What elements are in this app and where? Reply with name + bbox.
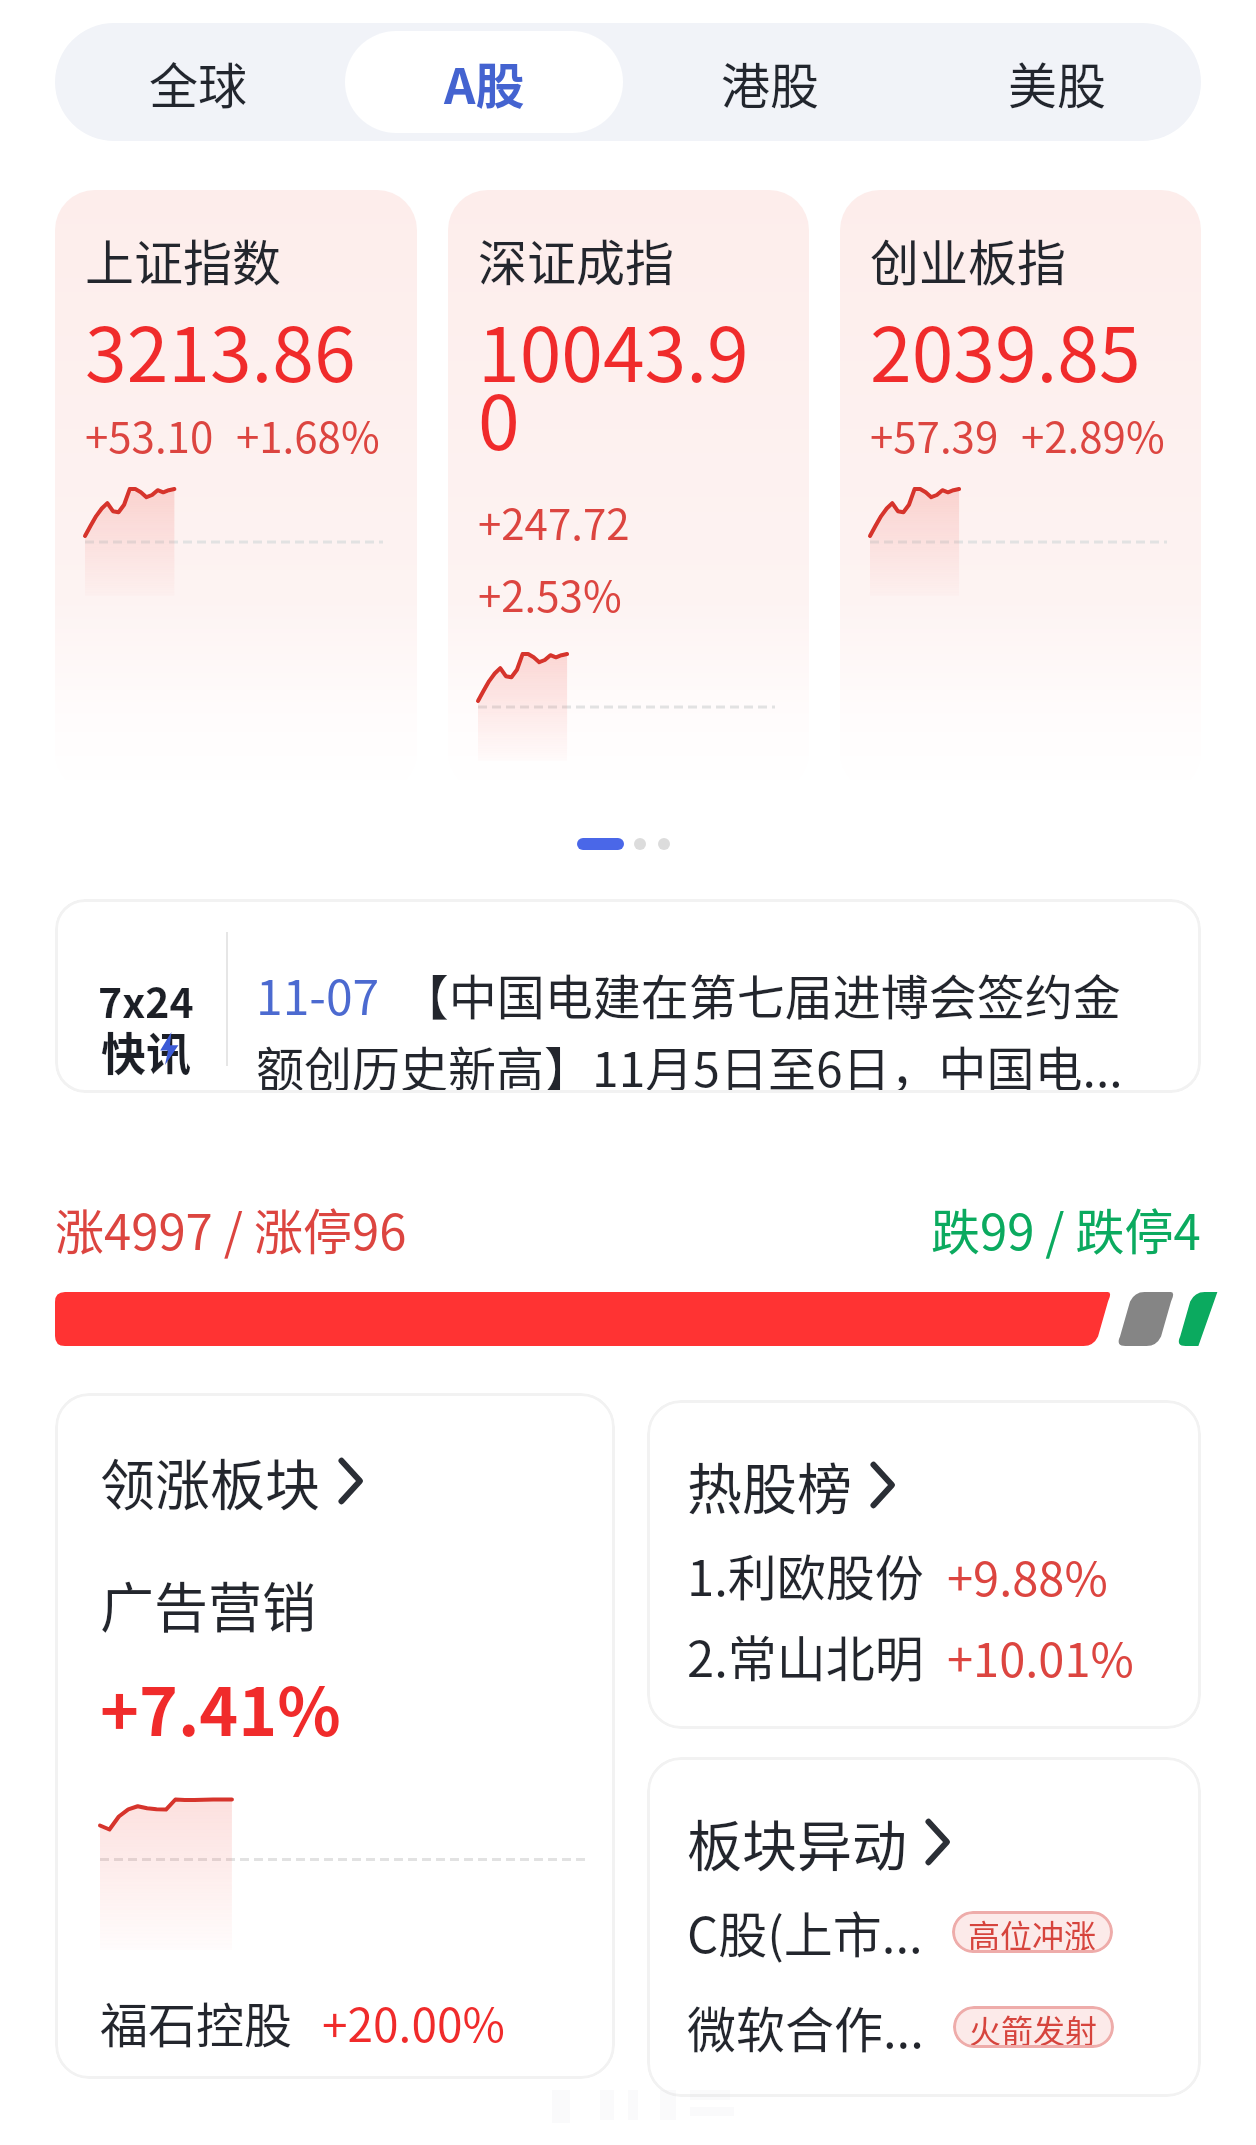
button[interactable]: 领涨板块 bbox=[55, 1393, 615, 2079]
staticText: 福石控股 bbox=[100, 1987, 293, 2057]
staticText: 板块异动 bbox=[687, 1802, 908, 1882]
staticText: 微软合作... bbox=[687, 1991, 924, 2062]
button[interactable]: A股 bbox=[345, 31, 623, 133]
button[interactable]: 美股 bbox=[918, 31, 1197, 133]
staticText: 2039.85 bbox=[870, 295, 1141, 404]
staticText: 深证成指 bbox=[478, 224, 675, 295]
staticText: +7.41% bbox=[100, 1659, 341, 1755]
button[interactable]: 7x24 bbox=[55, 899, 1201, 1093]
staticText: 火箭发射 bbox=[969, 2006, 1098, 2048]
staticText: +10.01% bbox=[947, 1622, 1134, 1690]
staticText: 领涨板块 bbox=[100, 1441, 321, 1521]
staticText: 快讯 bbox=[101, 1019, 192, 1084]
button[interactable]: 深证成指 bbox=[448, 190, 809, 792]
staticText: +2.89% bbox=[1021, 404, 1165, 465]
staticText: 全球 bbox=[149, 47, 248, 118]
button[interactable]: 上证指数 bbox=[55, 190, 417, 792]
staticText: 上证指数 bbox=[85, 224, 282, 295]
staticText: +1.68% bbox=[236, 404, 380, 465]
button[interactable]: Page 1, current bbox=[577, 838, 624, 850]
staticText: +2.53% bbox=[478, 563, 622, 624]
staticText: +53.10 bbox=[85, 404, 214, 465]
button[interactable]: 创业板指 bbox=[840, 190, 1201, 792]
staticText: 1.利欧股份 bbox=[687, 1539, 924, 1610]
staticText: C股(上市... bbox=[687, 1896, 923, 1967]
staticText: 7x24 bbox=[98, 970, 194, 1029]
button[interactable]: 全球 bbox=[59, 31, 337, 133]
staticText: 创业板指 bbox=[870, 224, 1067, 295]
button[interactable]: Page 3 bbox=[658, 838, 670, 850]
staticText: A股 bbox=[444, 47, 525, 118]
staticText: 涨4997 / 涨停96 bbox=[55, 1193, 407, 1264]
staticText: 跌99 / 跌停4 bbox=[931, 1193, 1201, 1264]
button[interactable]: 板块异动 bbox=[647, 1757, 1201, 2097]
staticText: 高位冲涨 bbox=[968, 1911, 1097, 1953]
staticText: 11-07 【中国电建在第七届进博会签约金额创历史新高】11月5日至6日，中国电… bbox=[256, 959, 1146, 1093]
staticText: +20.00% bbox=[322, 1989, 505, 2056]
staticText: +57.39 bbox=[870, 404, 999, 465]
staticText: 2.常山北明 bbox=[687, 1620, 924, 1691]
button[interactable]: 港股 bbox=[631, 31, 910, 133]
staticText: +9.88% bbox=[947, 1541, 1108, 1609]
staticText: 热股榜 bbox=[687, 1445, 853, 1525]
staticText: 广告营销 bbox=[100, 1565, 316, 1643]
staticText: 美股 bbox=[1008, 47, 1107, 118]
staticText: +247.72 bbox=[478, 491, 630, 552]
staticText: 港股 bbox=[721, 47, 820, 118]
button[interactable]: 热股榜 bbox=[647, 1400, 1201, 1729]
button[interactable]: Page 2 bbox=[634, 838, 646, 850]
staticText: 3213.86 bbox=[85, 295, 356, 404]
staticText: 10043.90 bbox=[478, 295, 775, 472]
